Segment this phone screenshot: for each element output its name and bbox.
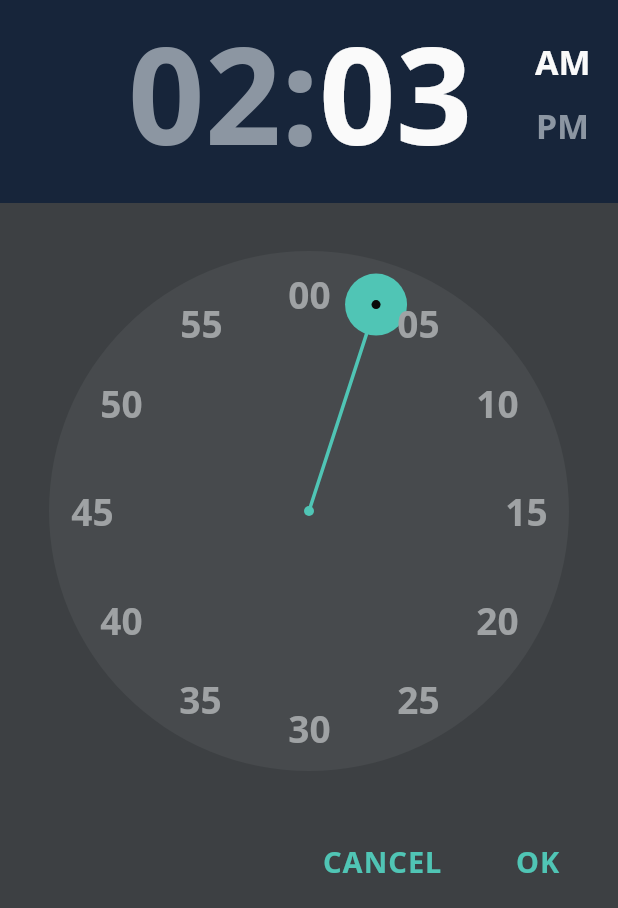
button[interactable]: 15 bbox=[486, 486, 566, 536]
button[interactable]: 45 bbox=[52, 486, 132, 536]
staticText: OK bbox=[516, 842, 561, 881]
staticText: 00 bbox=[288, 269, 331, 319]
button[interactable]: 10 bbox=[457, 378, 537, 428]
button[interactable]: 50 bbox=[81, 378, 161, 428]
staticText: 35 bbox=[179, 674, 222, 724]
staticText: 30 bbox=[288, 703, 331, 753]
button[interactable]: 30 bbox=[269, 703, 349, 753]
staticText: CANCEL bbox=[323, 842, 443, 881]
button[interactable]: 35 bbox=[160, 674, 240, 724]
staticText: 10 bbox=[476, 378, 519, 428]
staticText: 50 bbox=[100, 378, 143, 428]
staticText: 25 bbox=[397, 674, 440, 724]
staticText: 02: bbox=[128, 2, 319, 185]
staticText: 55 bbox=[180, 298, 223, 348]
staticText: 20 bbox=[476, 595, 519, 645]
staticText: 03 bbox=[319, 2, 473, 185]
button[interactable]: 40 bbox=[81, 595, 161, 645]
staticText: 45 bbox=[71, 486, 114, 536]
button[interactable]: 00 bbox=[269, 269, 349, 319]
staticText: 15 bbox=[505, 486, 548, 536]
staticText: AM bbox=[535, 39, 591, 85]
button[interactable]: 55 bbox=[161, 298, 241, 348]
button[interactable]: OK bbox=[494, 838, 582, 884]
staticText: 40 bbox=[100, 595, 143, 645]
button[interactable]: 05 bbox=[378, 298, 458, 348]
staticText: 05 bbox=[397, 298, 440, 348]
button[interactable]: CANCEL bbox=[308, 838, 458, 884]
button[interactable]: PM bbox=[536, 103, 590, 149]
button[interactable]: 25 bbox=[378, 674, 458, 724]
button[interactable]: AM bbox=[535, 39, 591, 85]
staticText: PM bbox=[536, 103, 590, 149]
button[interactable]: 20 bbox=[457, 595, 537, 645]
